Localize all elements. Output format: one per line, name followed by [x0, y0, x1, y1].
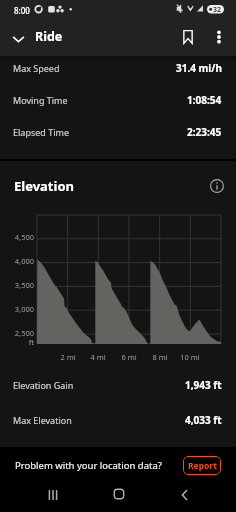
- staticText: 32: [213, 5, 222, 15]
- staticText: 4,033 ft: [185, 413, 222, 427]
- staticText: Moving Time: [13, 94, 68, 106]
- staticText: 8:00: [14, 5, 30, 16]
- button[interactable]: Elapsed Time: [0, 116, 236, 148]
- staticText: Max Speed: [13, 62, 60, 74]
- staticText: Ride: [35, 28, 63, 45]
- staticText: Problem with your location data?: [15, 459, 162, 472]
- button[interactable]: Moving Time: [0, 84, 236, 116]
- staticText: Elevation: [14, 177, 74, 195]
- staticText: 8 mi: [145, 352, 175, 362]
- staticText: Elevation Gain: [13, 379, 74, 391]
- staticText: 4 mi: [83, 352, 113, 362]
- staticText: 2,500: [9, 328, 34, 338]
- staticText: 2:23:45: [187, 125, 222, 139]
- button[interactable]: Elevation Gain: [0, 369, 236, 401]
- staticText: 10 mi: [175, 352, 205, 362]
- button[interactable]: Info: [206, 175, 228, 197]
- button[interactable]: Max Speed: [0, 52, 236, 84]
- staticText: ft: [9, 337, 34, 347]
- staticText: 2 mi: [53, 352, 83, 362]
- button[interactable]: Bookmark: [174, 23, 202, 51]
- button[interactable]: Home: [103, 480, 135, 508]
- staticText: 1:08:54: [187, 93, 222, 107]
- staticText: 31.4 mi/h: [176, 61, 222, 75]
- staticText: 3,000: [9, 304, 34, 314]
- staticText: Elapsed Time: [13, 126, 69, 138]
- staticText: 6 mi: [114, 352, 144, 362]
- button[interactable]: Recents: [37, 481, 69, 509]
- staticText: 4,500: [9, 232, 34, 242]
- staticText: Max Elevation: [13, 414, 72, 426]
- button[interactable]: Report: [183, 456, 221, 475]
- staticText: 1,943 ft: [185, 378, 222, 392]
- staticText: 3,500: [9, 280, 34, 290]
- button[interactable]: Max Elevation: [0, 404, 236, 436]
- staticText: 4,000: [9, 256, 34, 266]
- button[interactable]: Back: [169, 481, 201, 509]
- staticText: Report: [188, 460, 217, 472]
- button[interactable]: More options: [205, 23, 233, 51]
- button[interactable]: Collapse: [4, 24, 32, 52]
